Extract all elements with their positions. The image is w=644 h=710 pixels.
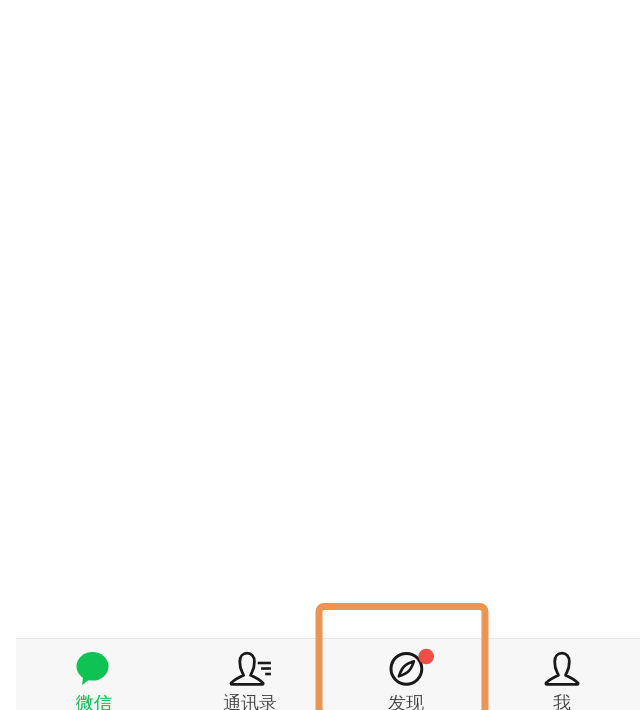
button[interactable]: Me (484, 639, 640, 710)
staticText: 通讯录 (223, 692, 277, 710)
button[interactable]: Discover (328, 639, 484, 710)
staticText: 我 (553, 692, 571, 710)
staticText: 发现 (388, 692, 424, 710)
button[interactable]: WeChat (16, 639, 172, 710)
button[interactable]: Contacts (172, 639, 328, 710)
staticText: 微信 (76, 692, 112, 710)
